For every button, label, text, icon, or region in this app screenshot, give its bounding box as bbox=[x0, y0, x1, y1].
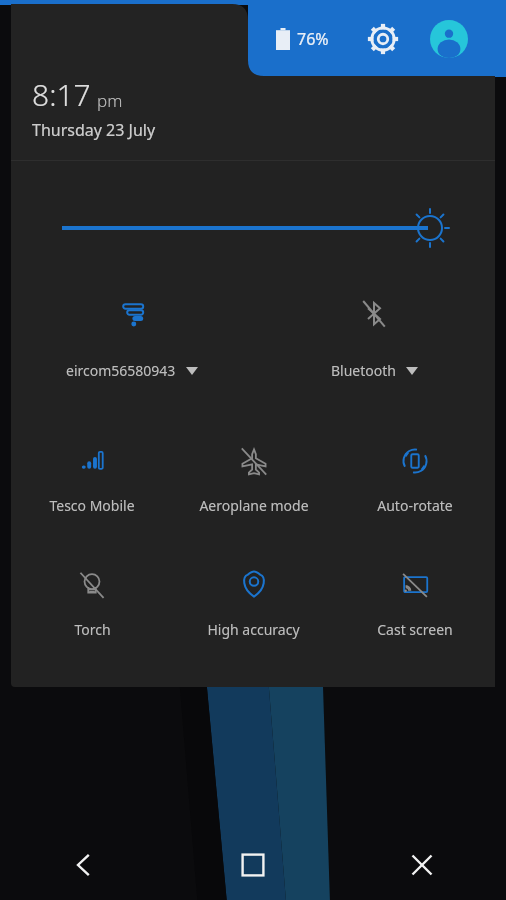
staticText: pm bbox=[97, 89, 123, 112]
staticText: eircom56580943 bbox=[66, 361, 176, 380]
button[interactable]: Aeroplane mode bbox=[173, 432, 334, 534]
button[interactable]: Thursday 23 July bbox=[32, 119, 156, 141]
staticText: Bluetooth bbox=[331, 361, 396, 380]
button[interactable]: Home bbox=[168, 830, 337, 900]
button[interactable]: Tesco Mobile bbox=[11, 432, 173, 534]
staticText: Torch bbox=[74, 620, 111, 639]
button[interactable]: Close bbox=[337, 830, 506, 900]
button[interactable]: Auto-rotate bbox=[334, 432, 495, 534]
button[interactable]: Settings bbox=[361, 17, 405, 61]
staticText: Cast screen bbox=[377, 620, 453, 639]
button[interactable]: Wi-Fi bbox=[11, 285, 253, 400]
button[interactable]: Torch bbox=[11, 556, 173, 658]
staticText: Auto-rotate bbox=[377, 496, 453, 515]
button[interactable]: Brightness bbox=[40, 195, 470, 261]
button[interactable]: Bluetooth bbox=[253, 285, 495, 400]
button[interactable]: 8:17 bbox=[32, 74, 123, 115]
button[interactable]: Back bbox=[0, 830, 168, 900]
button[interactable]: High accuracy bbox=[173, 556, 334, 658]
button[interactable]: 76% bbox=[270, 22, 335, 56]
staticText: 76% bbox=[297, 28, 329, 50]
button[interactable]: User profile bbox=[427, 17, 471, 61]
staticText: High accuracy bbox=[207, 620, 300, 639]
staticText: Aeroplane mode bbox=[199, 496, 309, 515]
staticText: 8:17 bbox=[32, 74, 91, 115]
button[interactable]: Cast screen bbox=[334, 556, 495, 658]
staticText: Tesco Mobile bbox=[49, 496, 135, 515]
